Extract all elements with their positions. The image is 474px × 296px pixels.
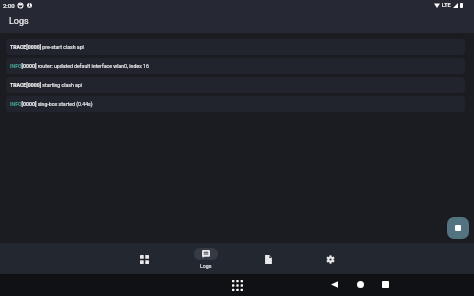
button[interactable]: All apps: [226, 274, 248, 296]
staticText: LTE: [442, 2, 451, 8]
button[interactable]: Stop service: [447, 217, 469, 239]
button[interactable]: Logs: [175, 243, 237, 274]
staticText: TRACE[0000] starting clash api: [10, 82, 83, 88]
staticText: Logs: [200, 263, 212, 269]
button[interactable]: TRACE[0000] starting clash api: [6, 77, 465, 93]
staticText: INFO[0000] router: updated default inter…: [10, 63, 149, 69]
button[interactable]: Back: [324, 274, 344, 294]
button[interactable]: INFO[0000] router: updated default inter…: [6, 58, 465, 74]
staticText: TRACE[0000] pre-start clash api: [10, 44, 84, 50]
button[interactable]: Settings: [299, 243, 361, 274]
staticText: INFO[0000] sing-box started (0.44s): [10, 101, 93, 107]
staticText: 2:00: [3, 2, 15, 9]
staticText: Logs: [9, 16, 29, 27]
button[interactable]: TRACE[0000] pre-start clash api: [6, 39, 465, 55]
button[interactable]: INFO[0000] sing-box started (0.44s): [6, 96, 465, 112]
button[interactable]: Profiles: [237, 243, 299, 274]
button[interactable]: Home: [350, 274, 370, 294]
button[interactable]: Dashboard: [113, 243, 175, 274]
button[interactable]: Recent apps: [375, 274, 395, 294]
